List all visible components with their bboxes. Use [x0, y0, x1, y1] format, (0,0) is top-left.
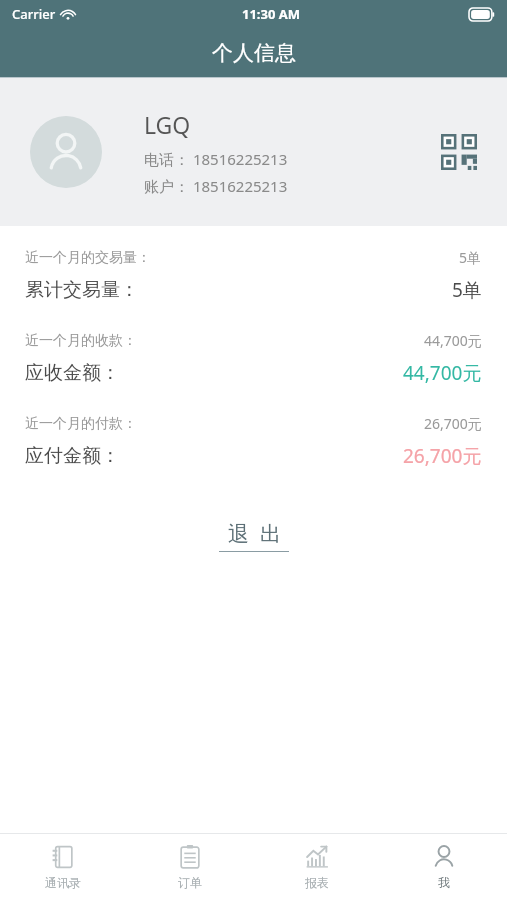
staticText: 5单: [452, 277, 482, 303]
staticText: 电话： 18516225213: [144, 149, 288, 169]
button[interactable]: 通讯录: [0, 834, 126, 900]
staticText: 我: [438, 875, 450, 890]
staticText: 应付金额：: [25, 444, 120, 468]
staticText: 近一个月的付款：: [25, 415, 137, 433]
button[interactable]: 报表: [253, 834, 380, 900]
staticText: 订单: [178, 875, 202, 890]
button[interactable]: 我: [380, 834, 507, 900]
staticText: 账户： 18516225213: [144, 176, 288, 196]
staticText: 44,700元: [424, 331, 482, 350]
staticText: 26,700元: [403, 443, 482, 469]
button[interactable]: 订单: [126, 834, 253, 900]
staticText: 通讯录: [45, 875, 81, 890]
staticText: 近一个月的收款：: [25, 332, 137, 350]
staticText: 近一个月的交易量：: [25, 249, 151, 267]
staticText: 退 出: [228, 519, 281, 548]
staticText: 报表: [305, 875, 329, 890]
staticText: 累计交易量：: [25, 278, 139, 302]
staticText: 5单: [459, 248, 482, 267]
staticText: 应收金额：: [25, 361, 120, 385]
staticText: 44,700元: [403, 360, 482, 386]
button[interactable]: 二维码: [437, 130, 481, 174]
staticText: LGQ: [144, 109, 191, 140]
staticText: 11:30 AM: [242, 5, 301, 23]
button[interactable]: LGQ: [0, 78, 507, 226]
staticText: Carrier: [12, 5, 56, 23]
staticText: 个人信息: [212, 40, 296, 66]
button[interactable]: 退 出: [203, 515, 305, 556]
staticText: 26,700元: [424, 414, 482, 433]
